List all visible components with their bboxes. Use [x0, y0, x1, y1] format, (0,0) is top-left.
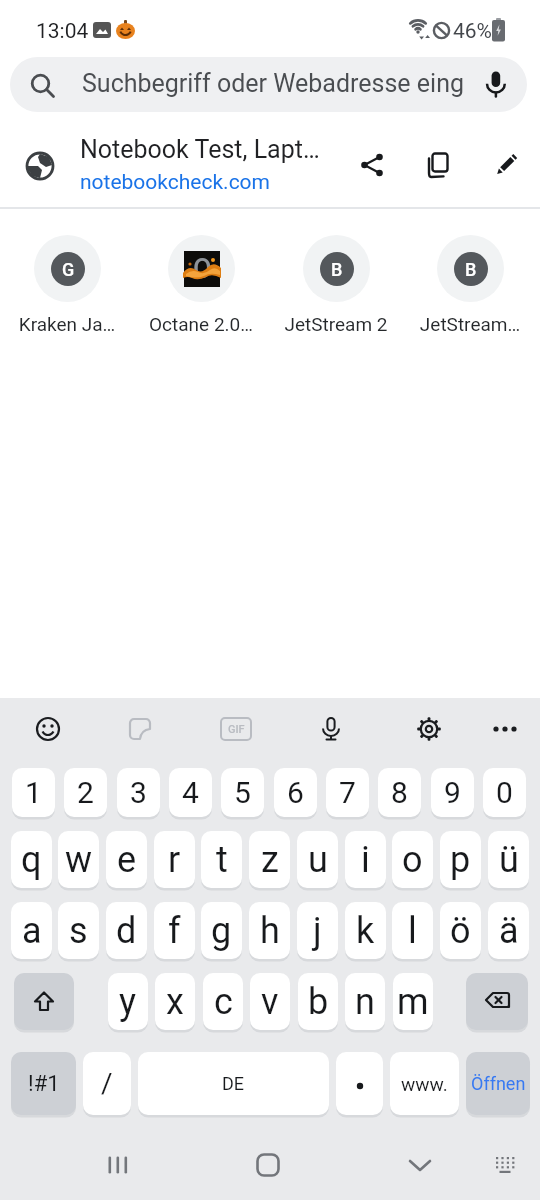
button[interactable]: 4: [169, 768, 212, 817]
button[interactable]: 5: [221, 768, 264, 817]
staticText: i: [361, 839, 370, 881]
staticText: m: [397, 981, 429, 1023]
staticText: z: [261, 839, 279, 881]
staticText: 13:04: [36, 19, 89, 44]
staticText: Notebook Test, Lapt…: [80, 135, 320, 164]
staticText: B: [331, 259, 343, 280]
button[interactable]: v: [250, 973, 290, 1030]
staticText: u: [308, 839, 328, 881]
button[interactable]: 8: [378, 768, 421, 817]
button[interactable]: G: [29, 231, 105, 341]
button[interactable]: GIF: [212, 705, 260, 753]
staticText: Kraken Ja…: [0, 313, 142, 335]
button[interactable]: x: [155, 973, 195, 1030]
button[interactable]: o: [392, 831, 433, 888]
button[interactable]: g: [201, 902, 242, 959]
staticText: e: [117, 839, 137, 881]
button[interactable]: w: [58, 831, 99, 888]
button[interactable]: m: [393, 973, 433, 1030]
staticText: h: [260, 910, 280, 952]
button[interactable]: s: [58, 902, 99, 959]
button[interactable]: i: [345, 831, 386, 888]
staticText: s: [69, 910, 88, 952]
button[interactable]: f: [154, 902, 195, 959]
staticText: 9: [444, 775, 461, 810]
button[interactable]: q: [11, 831, 52, 888]
button[interactable]: [396, 1141, 444, 1189]
staticText: 3: [130, 775, 147, 810]
staticText: g: [211, 910, 232, 952]
staticText: b: [308, 981, 329, 1023]
button[interactable]: [405, 705, 453, 753]
button[interactable]: z: [249, 831, 290, 888]
button[interactable]: t: [201, 831, 242, 888]
button[interactable]: 0: [483, 768, 526, 817]
button[interactable]: j: [297, 902, 338, 959]
button[interactable]: Suchbegriff oder Webadresse eing: [10, 57, 527, 112]
button[interactable]: ü: [488, 831, 529, 888]
button[interactable]: h: [249, 902, 290, 959]
staticText: 6: [287, 775, 304, 810]
staticText: ä: [499, 910, 519, 952]
button[interactable]: 7: [326, 768, 369, 817]
staticText: Suchbegriff oder Webadresse eing: [82, 69, 464, 98]
staticText: 4: [182, 775, 199, 810]
button[interactable]: O: [163, 231, 239, 341]
staticText: 0: [496, 775, 513, 810]
button[interactable]: B: [298, 231, 374, 341]
button[interactable]: u: [297, 831, 338, 888]
button[interactable]: 6: [274, 768, 317, 817]
button[interactable]: d: [106, 902, 147, 959]
button[interactable]: 2: [64, 768, 107, 817]
button[interactable]: [24, 705, 72, 753]
button[interactable]: a: [11, 902, 52, 959]
button[interactable]: [116, 705, 164, 753]
staticText: y: [119, 981, 137, 1023]
button[interactable]: [352, 145, 392, 185]
staticText: q: [21, 839, 42, 881]
staticText: G: [62, 259, 75, 280]
staticText: O: [193, 253, 212, 285]
staticText: r: [168, 839, 181, 881]
button[interactable]: e: [106, 831, 147, 888]
button[interactable]: p: [440, 831, 481, 888]
button[interactable]: [336, 1052, 383, 1115]
staticText: k: [356, 910, 375, 952]
button[interactable]: Öffnen: [466, 1052, 530, 1115]
button[interactable]: 9: [431, 768, 474, 817]
button[interactable]: l: [392, 902, 433, 959]
button[interactable]: b: [298, 973, 338, 1030]
staticText: 5: [234, 775, 251, 810]
button[interactable]: [244, 1141, 292, 1189]
staticText: a: [22, 910, 42, 952]
staticText: Öffnen: [471, 1073, 526, 1094]
button[interactable]: /: [83, 1052, 131, 1115]
button[interactable]: r: [154, 831, 195, 888]
staticText: x: [166, 981, 184, 1023]
button[interactable]: [481, 705, 529, 753]
staticText: c: [214, 981, 233, 1023]
button[interactable]: 3: [117, 768, 160, 817]
button[interactable]: ä: [488, 902, 529, 959]
button[interactable]: y: [108, 973, 148, 1030]
button[interactable]: [486, 145, 526, 185]
button[interactable]: [307, 705, 355, 753]
button[interactable]: B: [432, 231, 508, 341]
button[interactable]: [14, 973, 74, 1030]
button[interactable]: ö: [440, 902, 481, 959]
staticText: j: [313, 910, 322, 952]
button[interactable]: DE: [138, 1052, 329, 1115]
button[interactable]: n: [345, 973, 385, 1030]
button[interactable]: !#1: [11, 1052, 76, 1115]
staticText: notebookcheck.com: [80, 170, 271, 195]
button[interactable]: www.: [390, 1052, 459, 1115]
button[interactable]: [481, 1141, 529, 1189]
button[interactable]: c: [203, 973, 243, 1030]
button[interactable]: [418, 145, 458, 185]
button[interactable]: k: [345, 902, 386, 959]
staticText: B: [465, 259, 477, 280]
button[interactable]: [93, 1141, 141, 1189]
staticText: JetStream…: [395, 313, 540, 335]
button[interactable]: 1: [12, 768, 55, 817]
button[interactable]: [466, 973, 528, 1030]
